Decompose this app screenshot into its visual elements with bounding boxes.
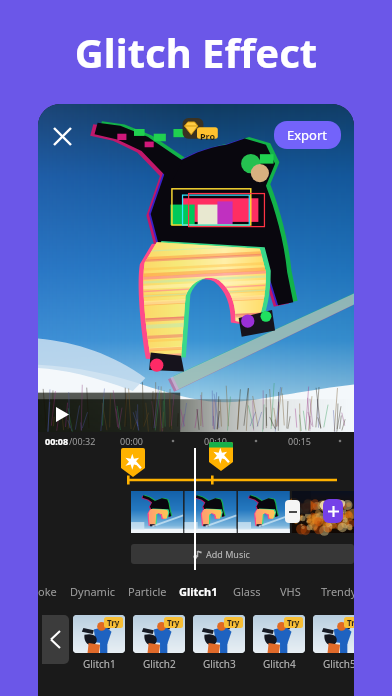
staticText: Glitch5	[323, 657, 354, 671]
staticText: Pro	[200, 130, 216, 142]
staticText: Glitch1	[83, 657, 116, 671]
button[interactable]: Glass	[229, 584, 265, 599]
button[interactable]: Add clip	[323, 499, 343, 523]
button[interactable]: Try	[253, 615, 305, 671]
button[interactable]: Back	[42, 615, 69, 664]
button[interactable]: Dynamic	[66, 584, 120, 599]
staticText: Dynamic	[70, 584, 116, 599]
button[interactable]: Glitch1	[175, 584, 222, 599]
staticText: Glitch4	[263, 657, 296, 671]
button[interactable]: oke	[38, 584, 61, 599]
button[interactable]: Export	[274, 121, 341, 149]
staticText: Try	[107, 617, 120, 628]
button[interactable]: Particle	[124, 584, 171, 599]
staticText: Glitch3	[203, 657, 236, 671]
staticText: Trendy	[321, 584, 354, 599]
staticText: Try	[227, 617, 240, 628]
button[interactable]	[292, 491, 354, 533]
staticText: Glitch Effect	[0, 25, 392, 79]
button[interactable]: Add Music	[131, 544, 354, 564]
button[interactable]: Pro	[181, 118, 221, 144]
button[interactable]: Effect marker	[209, 442, 233, 471]
staticText: 00:08	[45, 435, 69, 447]
button[interactable]: Effect marker	[121, 448, 145, 477]
staticText: 00:00	[120, 435, 144, 447]
button[interactable]: Try	[193, 615, 245, 671]
staticText: Add Music	[206, 548, 250, 560]
staticText: /00:32	[69, 435, 96, 447]
staticText: Glitch2	[143, 657, 176, 671]
staticText: Try	[167, 617, 180, 628]
button[interactable]: Try	[73, 615, 125, 671]
staticText: Particle	[128, 584, 167, 599]
button[interactable]: Try	[133, 615, 185, 671]
staticText: Glass	[233, 584, 261, 599]
button[interactable]: Remove clip	[285, 500, 300, 523]
button[interactable]	[131, 491, 291, 533]
button[interactable]: VHS	[276, 584, 305, 599]
staticText: 00:10	[204, 435, 228, 447]
button[interactable]: Trendy	[317, 584, 354, 599]
staticText: 00:15	[288, 435, 312, 447]
button[interactable]: Try	[313, 615, 354, 671]
staticText: oke	[38, 584, 57, 599]
staticText: VHS	[280, 584, 301, 599]
staticText: Try	[347, 617, 354, 628]
staticText: Export	[287, 126, 328, 144]
staticText: Try	[287, 617, 300, 628]
staticText: Glitch1	[179, 584, 218, 599]
button[interactable]: Close	[44, 118, 80, 154]
button[interactable]: Play	[48, 400, 76, 428]
